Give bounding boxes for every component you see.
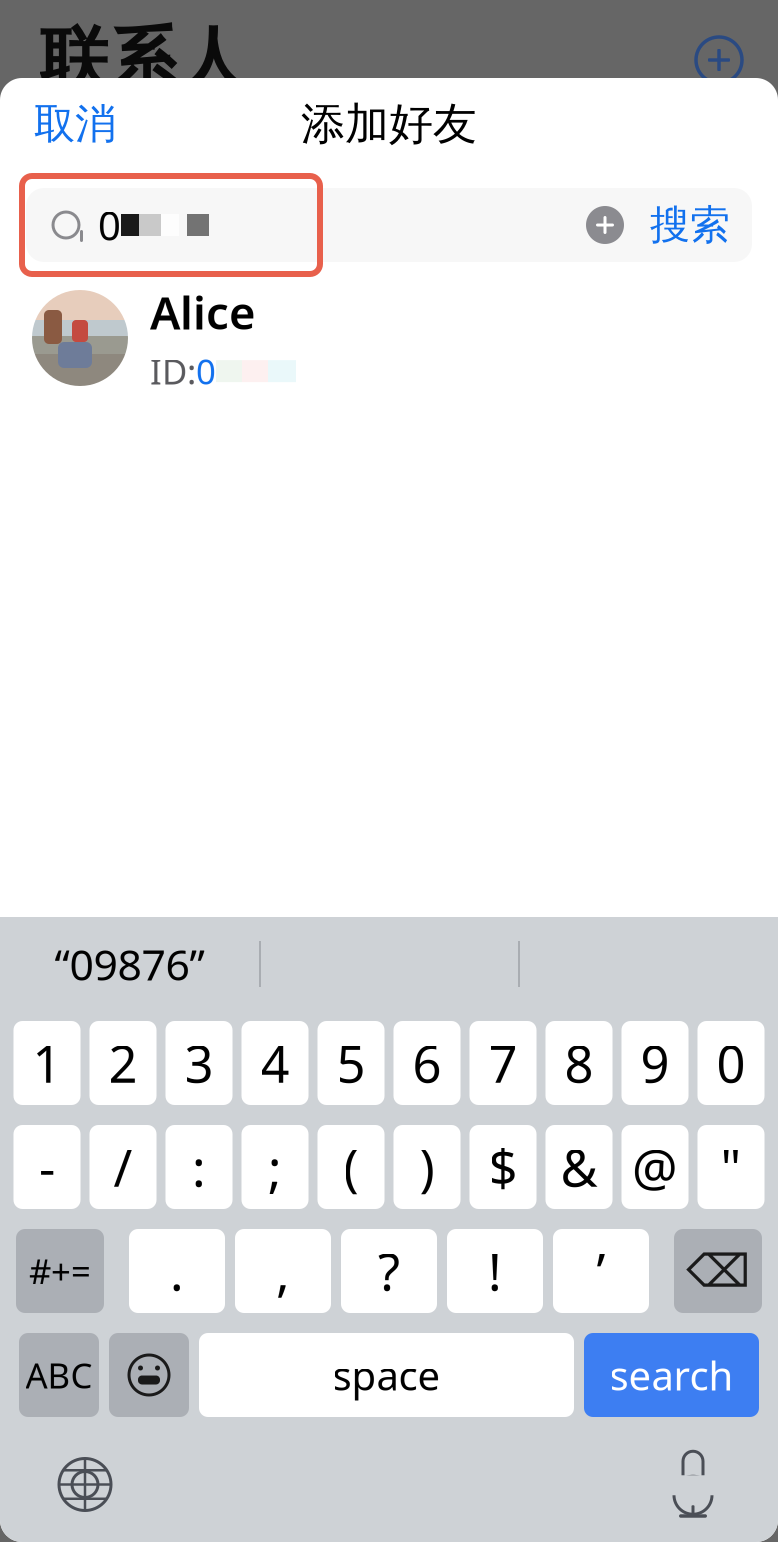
staticText: search — [609, 1348, 733, 1401]
staticText: 2 — [108, 1029, 137, 1097]
staticText: space — [332, 1348, 440, 1401]
staticText: 7 — [488, 1029, 517, 1097]
staticText: : — [192, 1133, 206, 1201]
button[interactable]: Delete — [674, 1229, 762, 1313]
staticText: 5 — [336, 1029, 365, 1097]
button[interactable]: search — [584, 1333, 759, 1417]
staticText: . — [170, 1237, 184, 1305]
staticText: 联系人 — [40, 17, 247, 103]
button[interactable]: " — [697, 1125, 764, 1209]
staticText: 0 — [98, 198, 121, 251]
button[interactable]: ( — [317, 1125, 384, 1209]
button[interactable]: 9 — [621, 1021, 688, 1105]
button[interactable]: , — [235, 1229, 331, 1313]
staticText: 搜索 — [650, 200, 730, 249]
staticText: 0 — [716, 1029, 745, 1097]
button[interactable]: 1 — [13, 1021, 80, 1105]
staticText: Alice — [150, 282, 256, 342]
staticText: " — [720, 1133, 741, 1201]
button[interactable]: space — [199, 1333, 574, 1417]
button[interactable]: ? — [341, 1229, 437, 1313]
button[interactable]: Add contact — [688, 29, 778, 91]
button[interactable]: @ — [621, 1125, 688, 1209]
staticText: ? — [378, 1237, 400, 1305]
button[interactable]: 3 — [165, 1021, 232, 1105]
button[interactable]: 6 — [393, 1021, 460, 1105]
staticText: ⌫ — [686, 1245, 750, 1297]
button[interactable]: ’ — [553, 1229, 649, 1313]
button[interactable]: #+= — [16, 1229, 104, 1313]
button[interactable]: Clear text — [582, 202, 628, 248]
staticText: 8 — [564, 1029, 593, 1097]
button[interactable]: 5 — [317, 1021, 384, 1105]
staticText: - — [39, 1133, 55, 1201]
staticText: ) — [419, 1133, 434, 1201]
button[interactable]: $ — [469, 1125, 536, 1209]
button[interactable]: . — [129, 1229, 225, 1313]
staticText: ! — [488, 1237, 502, 1305]
button[interactable]: “09876” — [0, 925, 259, 1003]
button[interactable]: Alice — [0, 280, 778, 396]
button[interactable]: & — [545, 1125, 612, 1209]
button[interactable]: 取消 — [18, 89, 132, 159]
staticText: “09876” — [54, 936, 204, 992]
staticText: 1 — [32, 1029, 61, 1097]
staticText: & — [560, 1133, 597, 1201]
button[interactable]: ABC — [19, 1333, 99, 1417]
staticText: @ — [632, 1133, 678, 1201]
button[interactable]: : — [165, 1125, 232, 1209]
staticText: 0 — [196, 348, 216, 394]
staticText: 3 — [184, 1029, 213, 1097]
staticText: ( — [343, 1133, 358, 1201]
button[interactable]: ; — [241, 1125, 308, 1209]
staticText: #+= — [29, 1248, 91, 1294]
staticText: 9 — [640, 1029, 669, 1097]
button[interactable]: 8 — [545, 1021, 612, 1105]
button[interactable]: 4 — [241, 1021, 308, 1105]
staticText: 4 — [260, 1029, 289, 1097]
button[interactable]: 7 — [469, 1021, 536, 1105]
staticText: 取消 — [34, 99, 116, 149]
staticText: ; — [268, 1133, 282, 1201]
staticText: 添加好友 — [301, 97, 477, 151]
staticText: $ — [488, 1133, 517, 1201]
button[interactable]: ! — [447, 1229, 543, 1313]
button[interactable]: 搜索 — [650, 194, 730, 255]
staticText: ID: — [150, 348, 196, 394]
button[interactable]: Switch keyboard — [52, 1451, 118, 1517]
button[interactable]: 0 — [697, 1021, 764, 1105]
staticText: / — [113, 1133, 132, 1201]
button[interactable]: 2 — [89, 1021, 156, 1105]
button[interactable]: - — [13, 1125, 80, 1209]
button[interactable]: Emoji keyboard — [109, 1333, 189, 1417]
button[interactable]: / — [89, 1125, 156, 1209]
staticText: ABC — [25, 1352, 92, 1398]
button[interactable]: ) — [393, 1125, 460, 1209]
button[interactable]: Dictation — [660, 1448, 726, 1520]
staticText: ’ — [596, 1237, 605, 1305]
staticText: , — [276, 1237, 290, 1305]
staticText: 6 — [412, 1029, 441, 1097]
